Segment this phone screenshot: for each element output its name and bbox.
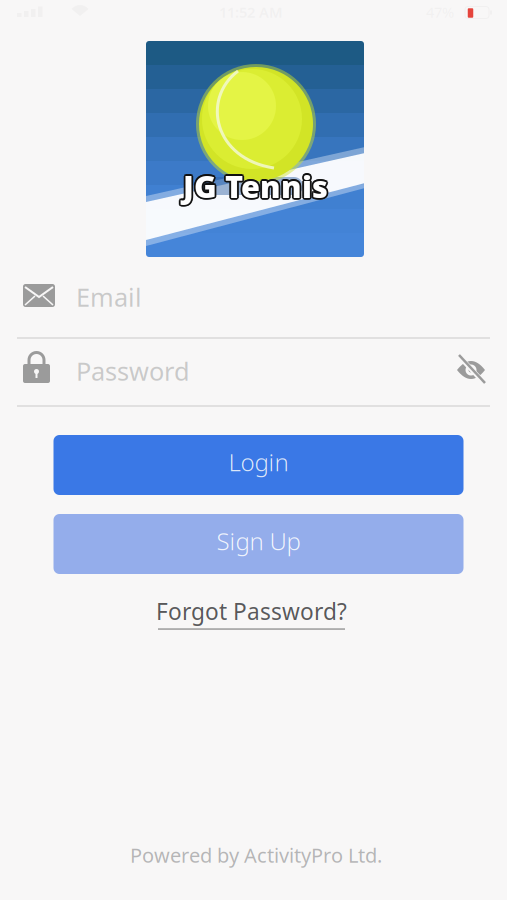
staticText: JG Tennis xyxy=(183,167,328,208)
staticText: JG Tennis xyxy=(184,167,329,208)
button[interactable]: Password xyxy=(17,348,490,407)
staticText: JG Tennis xyxy=(183,164,328,204)
staticText: Sign Up xyxy=(216,525,300,557)
staticText: JG Tennis xyxy=(182,167,327,208)
staticText: JG Tennis xyxy=(181,166,326,206)
staticText: JG Tennis xyxy=(185,166,330,206)
staticText: Email xyxy=(76,280,142,314)
staticText: Powered by ActivityPro Ltd. xyxy=(130,842,382,868)
button[interactable]: Forgot Password? xyxy=(156,596,347,630)
staticText: JG Tennis xyxy=(184,164,329,205)
staticText: Login xyxy=(228,446,288,478)
button[interactable]: Login xyxy=(53,435,463,495)
staticText: JG Tennis xyxy=(182,164,327,205)
button[interactable]: Email xyxy=(17,283,490,339)
staticText: Password xyxy=(76,354,190,388)
staticText: Forgot Password? xyxy=(156,596,347,626)
staticText: JG Tennis xyxy=(183,166,328,206)
button[interactable]: Show password xyxy=(454,354,488,386)
button[interactable]: Sign Up xyxy=(53,514,463,574)
